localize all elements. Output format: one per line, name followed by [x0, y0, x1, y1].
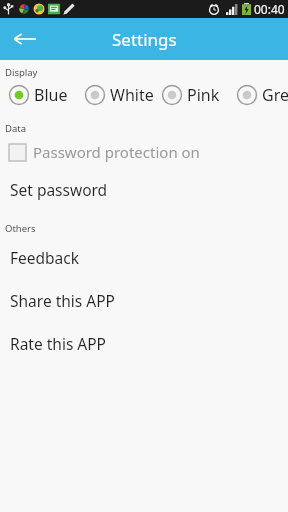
staticText: Feedback — [10, 247, 80, 268]
button[interactable]: Blue — [0, 82, 76, 108]
staticText: Green — [262, 84, 288, 106]
staticText: Password protection on — [33, 142, 200, 162]
staticText: Data — [5, 122, 27, 135]
button[interactable]: Rate this APP — [0, 322, 288, 365]
button[interactable]: White — [76, 82, 153, 108]
button[interactable]: Feedback — [0, 236, 288, 279]
button[interactable]: Set password — [0, 168, 288, 211]
staticText: Display — [5, 66, 38, 79]
button[interactable]: Password protection on — [0, 136, 288, 168]
staticText: Set password — [10, 179, 108, 200]
button[interactable]: Share this APP — [0, 279, 288, 322]
button[interactable]: Green — [228, 82, 288, 108]
staticText: Rate this APP — [10, 333, 106, 354]
button[interactable]: Pink — [153, 82, 228, 108]
staticText: Blue — [34, 84, 68, 106]
staticText: Others — [5, 222, 36, 235]
staticText: 00:40 — [254, 1, 285, 17]
staticText: Settings — [112, 28, 177, 51]
staticText: White — [110, 84, 153, 106]
staticText: Pink — [187, 84, 220, 106]
button[interactable]: Back — [0, 18, 48, 60]
staticText: Share this APP — [10, 290, 115, 311]
